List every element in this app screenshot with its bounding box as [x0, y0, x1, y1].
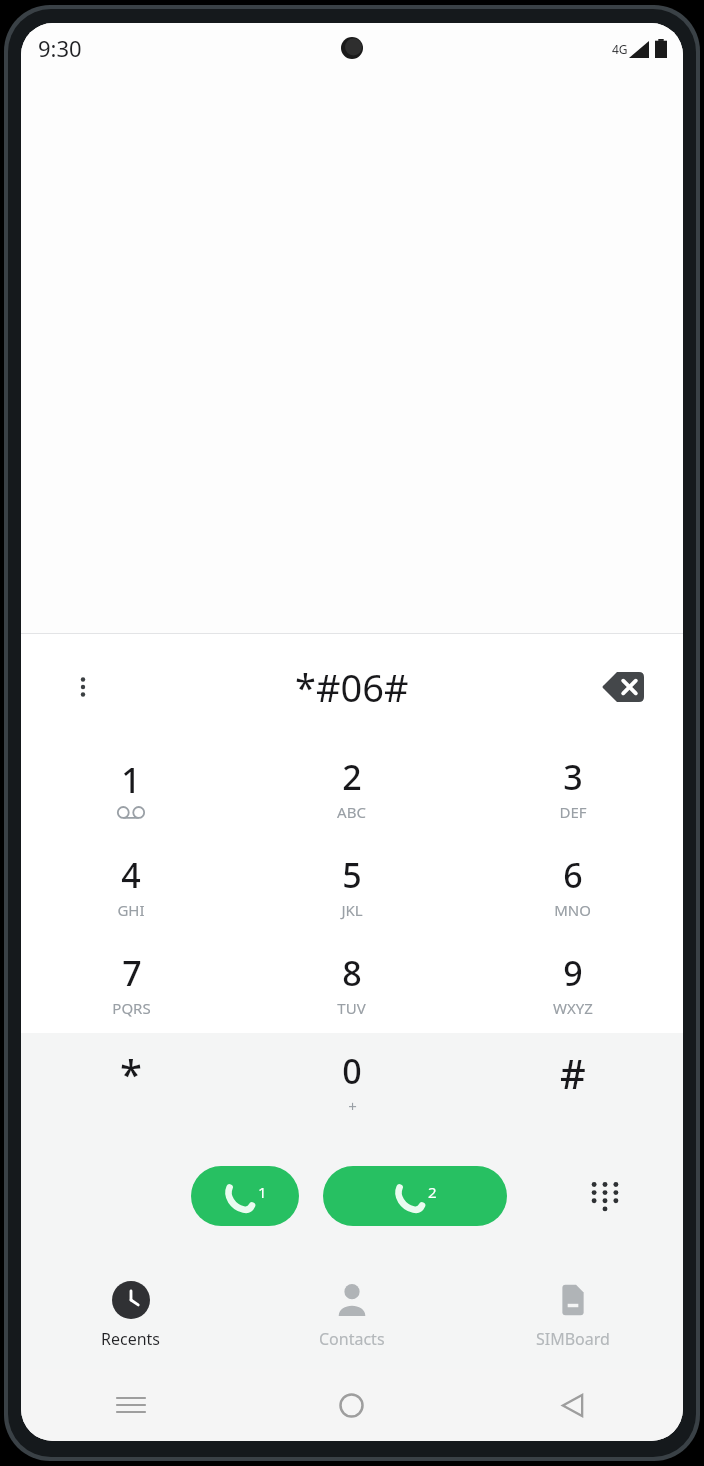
staticText: Recents — [101, 1328, 161, 1350]
staticText: GHI — [117, 900, 145, 920]
staticText: WXYZ — [553, 998, 593, 1018]
staticText: 4G — [612, 41, 628, 57]
staticText: MNO — [554, 900, 591, 920]
staticText: ABC — [337, 802, 366, 822]
button[interactable]: 4 — [21, 837, 241, 935]
button[interactable]: # — [462, 1033, 683, 1131]
staticText: 2 — [342, 754, 362, 800]
staticText: 1 — [258, 1182, 267, 1202]
button[interactable]: 8 — [241, 935, 462, 1033]
button[interactable]: Call with SIM 2 — [323, 1166, 507, 1226]
staticText: 2 — [428, 1182, 437, 1202]
button[interactable]: Hide dialpad — [573, 1164, 637, 1228]
staticText: PQRS — [112, 998, 151, 1018]
staticText: 8 — [342, 950, 362, 996]
button[interactable]: Recents — [21, 1261, 241, 1369]
button[interactable]: SIMBoard — [462, 1261, 683, 1369]
staticText: + — [348, 1096, 357, 1116]
staticText: 5 — [342, 852, 362, 898]
button[interactable]: * — [21, 1033, 241, 1131]
button[interactable]: More options — [61, 665, 105, 709]
button[interactable]: 5 — [241, 837, 462, 935]
staticText: # — [560, 1046, 586, 1100]
staticText: Contacts — [319, 1328, 385, 1350]
button[interactable]: Contacts — [241, 1261, 462, 1369]
button[interactable]: 2 — [241, 739, 462, 837]
button[interactable]: 3 — [462, 739, 683, 837]
button[interactable]: 0 — [241, 1033, 462, 1131]
staticText: JKL — [341, 900, 363, 920]
button[interactable]: 7 — [21, 935, 241, 1033]
button[interactable]: 9 — [462, 935, 683, 1033]
staticText: 0 — [342, 1048, 362, 1094]
staticText: *#06# — [295, 661, 409, 713]
staticText: 3 — [563, 754, 583, 800]
button[interactable]: Call with SIM 1 — [191, 1166, 299, 1226]
staticText: 7 — [122, 950, 142, 996]
staticText: DEF — [559, 802, 587, 822]
staticText: 9 — [563, 950, 583, 996]
button[interactable]: Home — [241, 1369, 462, 1441]
button[interactable]: Recent apps — [21, 1369, 241, 1441]
button[interactable]: Back — [462, 1369, 683, 1441]
staticText: TUV — [337, 998, 366, 1018]
button[interactable]: 1 — [21, 739, 241, 837]
button[interactable]: 6 — [462, 837, 683, 935]
staticText: SIMBoard — [536, 1328, 610, 1350]
staticText: 4 — [121, 852, 141, 898]
staticText: 1 — [121, 757, 141, 803]
staticText: 9:30 — [38, 33, 82, 63]
button[interactable]: Backspace — [597, 661, 649, 713]
staticText: * — [120, 1046, 142, 1100]
staticText: 6 — [563, 852, 583, 898]
